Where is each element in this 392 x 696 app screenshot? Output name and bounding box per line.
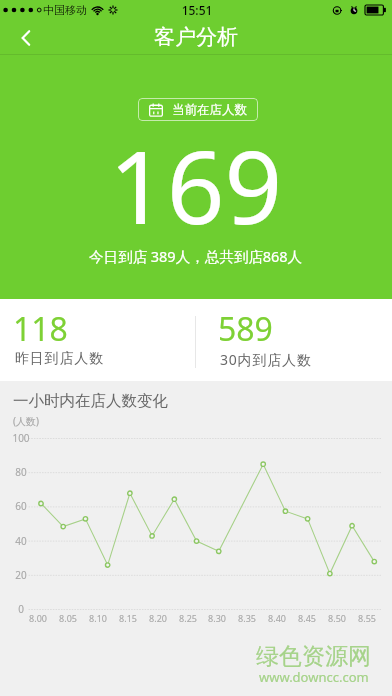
button[interactable]: Back [8, 20, 44, 55]
button[interactable]: 589 [196, 299, 392, 381]
staticText: 589 [218, 307, 273, 351]
staticText: 100 [1, 431, 41, 445]
staticText: 30内到店人数 [220, 350, 312, 369]
staticText: 8.30 [197, 612, 237, 624]
staticText: 60 [1, 499, 41, 513]
staticText: 8.50 [317, 612, 357, 624]
staticText: 客户分析 [154, 24, 238, 50]
staticText: 当前在店人数 [172, 102, 247, 118]
staticText: 80 [1, 465, 41, 479]
staticText: 8.00 [18, 612, 58, 624]
staticText: 8.40 [257, 612, 297, 624]
staticText: 昨日到店人数 [15, 350, 104, 368]
staticText: 中国移动 [43, 3, 87, 17]
staticText: 一小时内在店人数变化 [13, 391, 168, 411]
staticText: www.downcc.com [259, 668, 369, 686]
staticText: 8.55 [347, 612, 387, 624]
staticText: 8.45 [287, 612, 327, 624]
staticText: 118 [13, 307, 68, 351]
staticText: 今日到店 389人，总共到店868人 [89, 246, 303, 266]
staticText: 8.10 [78, 612, 118, 624]
staticText: 8.05 [48, 612, 88, 624]
staticText: 15:51 [157, 2, 237, 18]
staticText: 169 [109, 116, 283, 254]
staticText: 0 [1, 602, 41, 616]
staticText: 绿色资源网 [256, 642, 371, 671]
staticText: 8.15 [108, 612, 148, 624]
staticText: (人数) [13, 414, 39, 428]
staticText: 8.20 [138, 612, 178, 624]
staticText: 20 [1, 568, 41, 582]
button[interactable]: 当前在店人数 [138, 98, 258, 121]
staticText: 8.35 [227, 612, 267, 624]
staticText: 40 [1, 534, 41, 548]
staticText: 8.25 [168, 612, 208, 624]
button[interactable]: 118 [0, 299, 196, 381]
